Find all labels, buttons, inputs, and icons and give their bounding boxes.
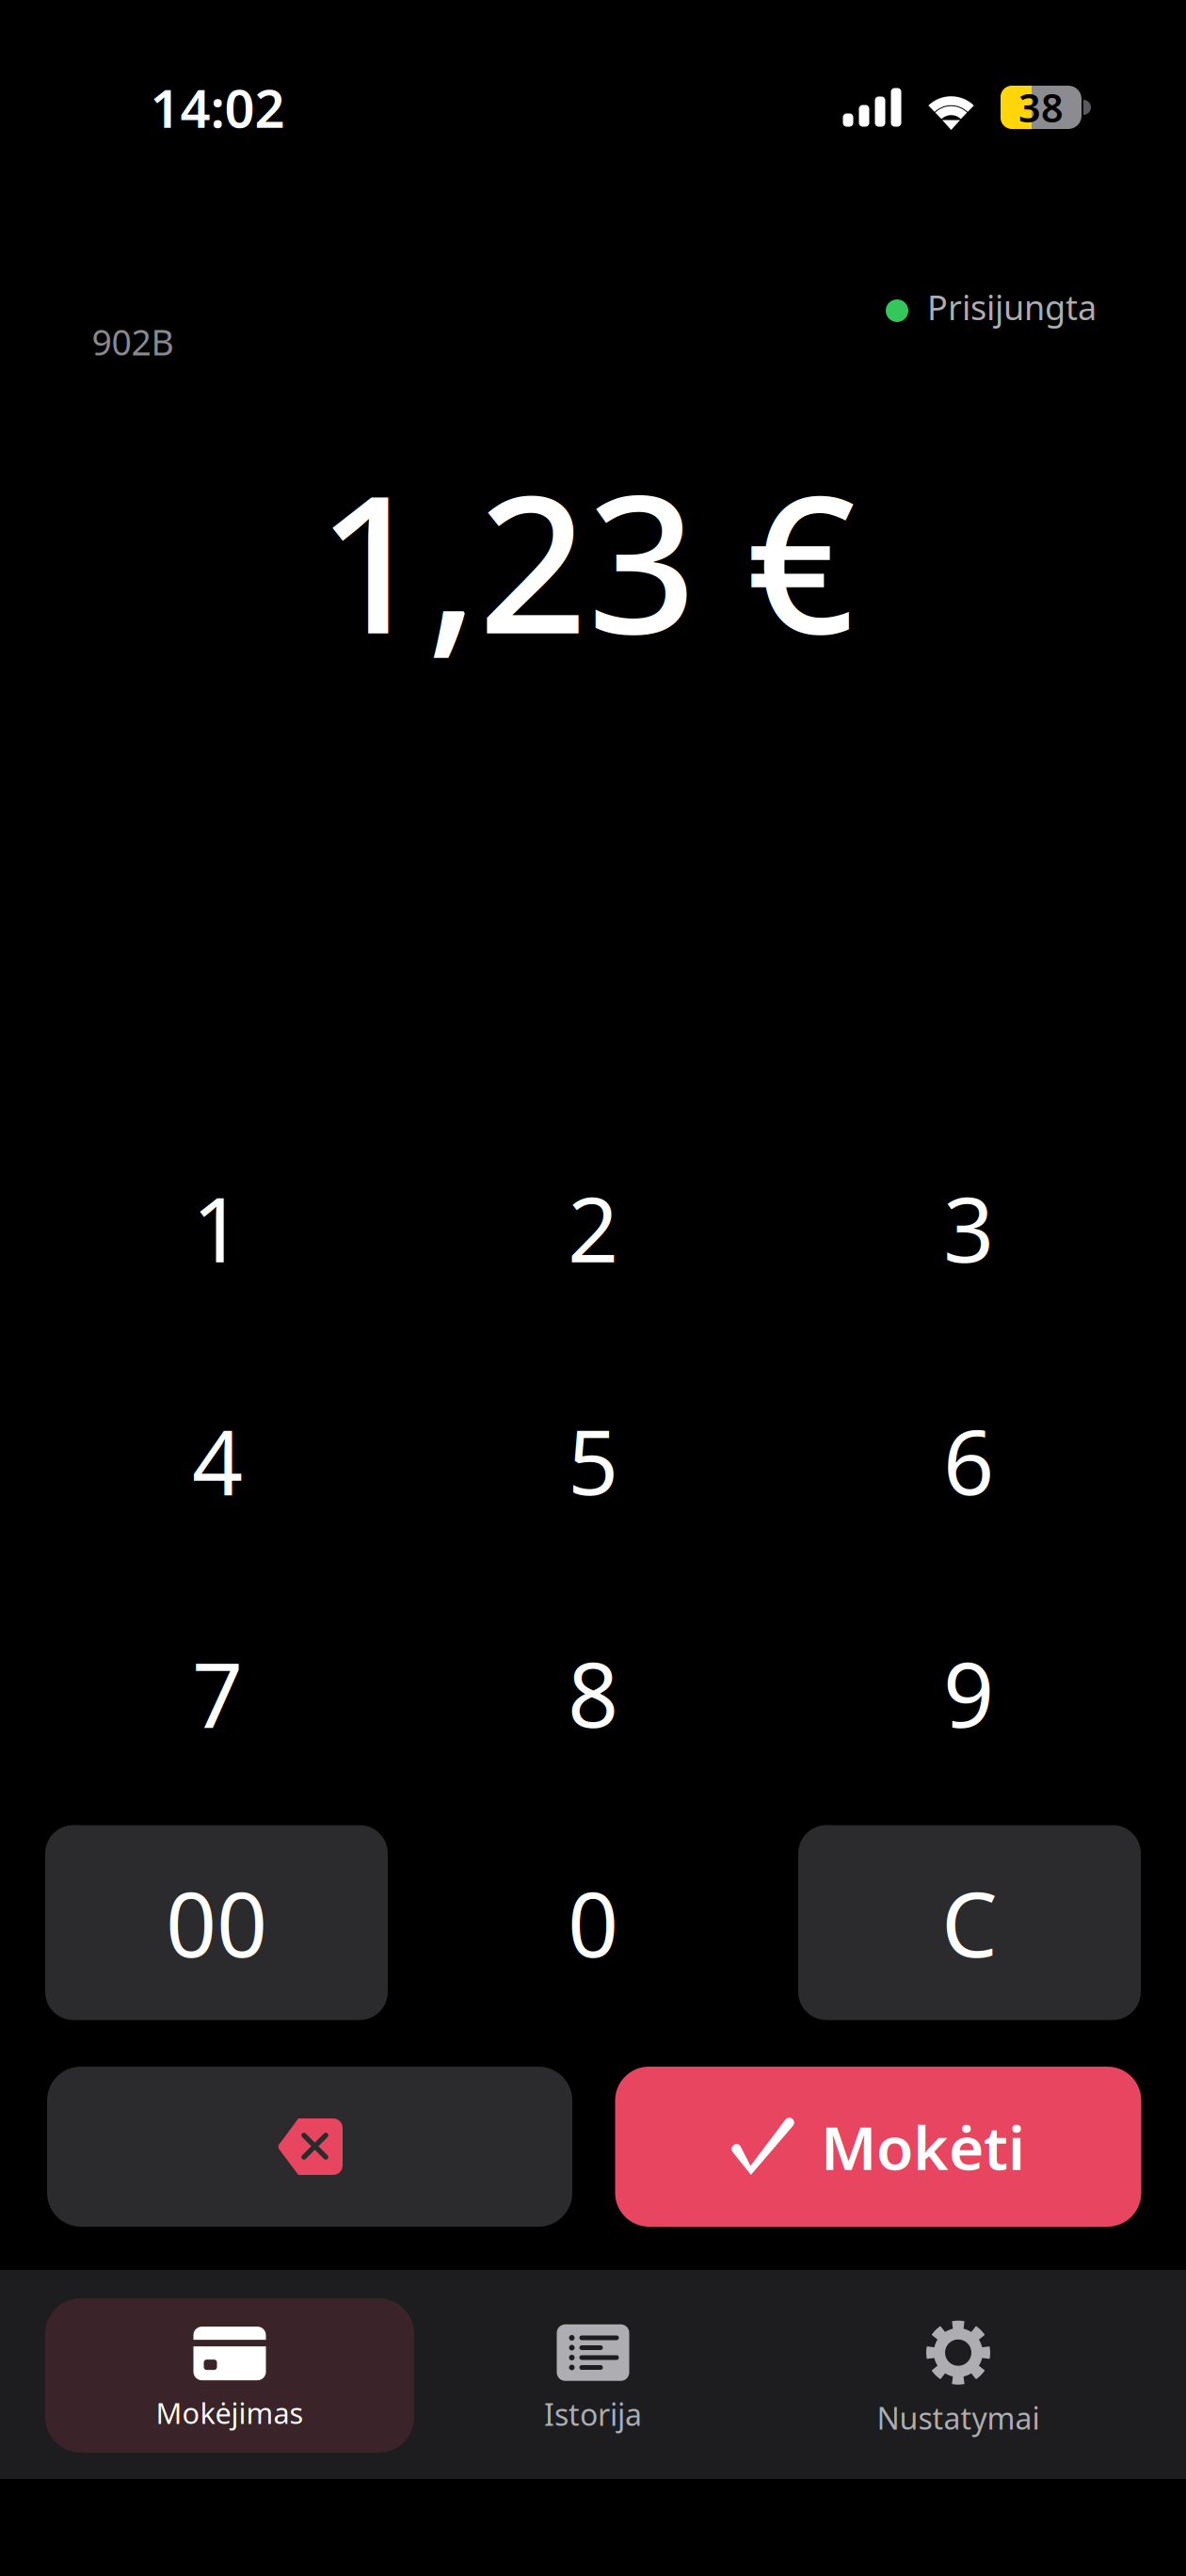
staticText: 902B (92, 318, 174, 365)
staticText: 7 (192, 1634, 243, 1752)
staticText: Mokėti (821, 2107, 1025, 2187)
staticText: Mokėjimas (156, 2393, 304, 2432)
button[interactable]: Backspace (47, 2067, 572, 2227)
button[interactable]: Mokėjimas (45, 2298, 414, 2453)
staticText: 9 (943, 1634, 994, 1752)
staticText: 0 (568, 1863, 618, 1982)
staticText: 00 (166, 1863, 267, 1982)
staticText: 3 (943, 1169, 994, 1287)
button[interactable]: 4 (35, 1344, 400, 1577)
staticText: Istorija (544, 2394, 642, 2434)
button[interactable]: 8 (410, 1577, 776, 1809)
staticText: 2 (568, 1169, 618, 1287)
staticText: 4 (192, 1401, 243, 1519)
staticText: 8 (568, 1634, 618, 1752)
button[interactable]: 5 (410, 1344, 776, 1577)
staticText: 1,23 € (317, 433, 856, 686)
button[interactable]: 0 (422, 1825, 764, 2020)
button[interactable]: C (798, 1825, 1141, 2020)
button[interactable]: Istorija (410, 2298, 776, 2453)
button[interactable]: 3 (786, 1111, 1151, 1344)
staticText: 5 (568, 1401, 618, 1519)
staticText: 14:02 (150, 72, 285, 142)
button[interactable]: 00 (45, 1825, 388, 2020)
staticText: Prisijungta (927, 284, 1097, 329)
staticText: 1 (192, 1169, 243, 1287)
button[interactable]: 1 (35, 1111, 400, 1344)
staticText: 6 (943, 1401, 994, 1519)
staticText: C (941, 1863, 998, 1982)
button[interactable]: 9 (786, 1577, 1151, 1809)
staticText: Nustatymai (877, 2398, 1040, 2438)
staticText: 38 (1018, 82, 1064, 133)
button[interactable]: Mokėti (615, 2067, 1141, 2227)
button[interactable]: 7 (35, 1577, 400, 1809)
button[interactable]: Nustatymai (776, 2298, 1141, 2453)
button[interactable]: 6 (786, 1344, 1151, 1577)
button[interactable]: 2 (410, 1111, 776, 1344)
